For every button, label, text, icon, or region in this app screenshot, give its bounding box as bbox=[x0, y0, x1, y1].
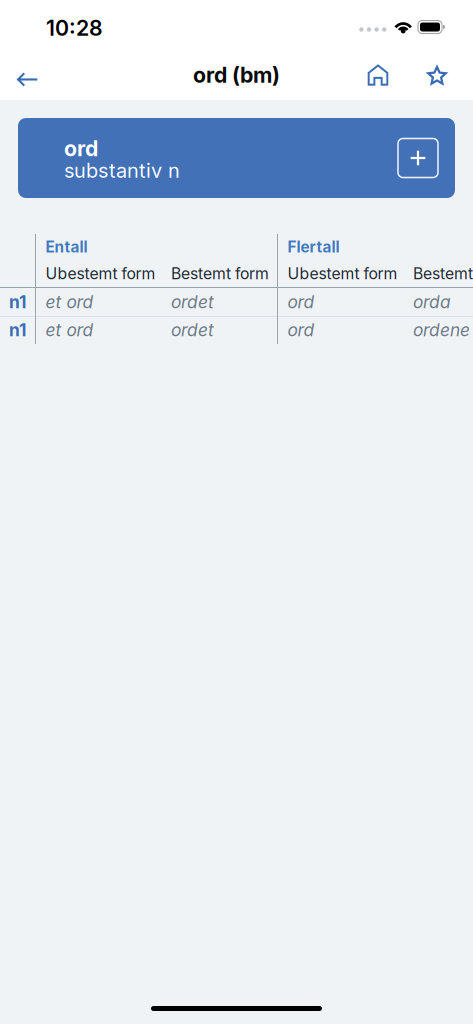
staticText: n1 bbox=[9, 319, 26, 340]
button[interactable]: Add word bbox=[398, 138, 438, 177]
staticText: 10:28 bbox=[46, 15, 103, 41]
staticText: ordet bbox=[171, 319, 214, 340]
staticText: ord (bm) bbox=[193, 62, 280, 88]
staticText: ordet bbox=[171, 291, 214, 312]
staticText: ord bbox=[287, 291, 314, 312]
staticText: Entall bbox=[45, 238, 87, 256]
staticText: Flertall bbox=[287, 238, 339, 256]
staticText: substantiv n bbox=[64, 158, 180, 183]
button[interactable]: Favourites bbox=[414, 52, 460, 98]
button[interactable]: Back bbox=[4, 56, 50, 102]
staticText: n1 bbox=[9, 291, 26, 312]
staticText: et ord bbox=[45, 319, 93, 340]
staticText: orda bbox=[413, 291, 451, 312]
staticText: Bestemt form bbox=[413, 264, 473, 283]
staticText: et ord bbox=[45, 291, 93, 312]
staticText: Bestemt form bbox=[171, 264, 269, 283]
staticText: ordene bbox=[413, 319, 470, 340]
staticText: ord bbox=[64, 136, 98, 161]
staticText: Ubestemt form bbox=[45, 264, 155, 283]
button[interactable]: Home bbox=[355, 52, 401, 98]
staticText: ord bbox=[287, 319, 314, 340]
staticText: Ubestemt form bbox=[287, 264, 397, 283]
